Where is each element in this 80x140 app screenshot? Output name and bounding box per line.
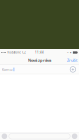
staticText: Komu: bbox=[2, 67, 13, 72]
staticText: ▾ bbox=[70, 51, 71, 54]
staticText: Vodafone CZ bbox=[7, 51, 26, 54]
button[interactable]: Camera bbox=[2, 133, 7, 139]
button[interactable]: Add contact bbox=[68, 65, 77, 74]
staticText: Zrušit bbox=[67, 58, 77, 63]
button[interactable]: Send bbox=[72, 133, 77, 139]
staticText: 11:44 bbox=[35, 51, 44, 54]
staticText: Nová zpráva bbox=[28, 58, 51, 63]
staticText: ⌁ bbox=[67, 51, 69, 54]
button[interactable]: Zrušit bbox=[65, 56, 79, 64]
